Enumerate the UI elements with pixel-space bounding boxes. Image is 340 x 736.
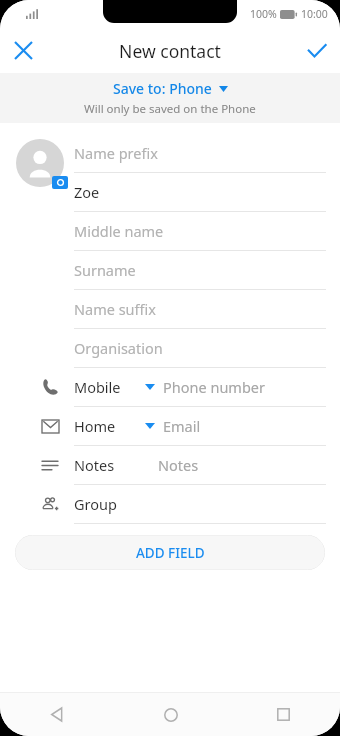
staticText: Mobile [74,377,121,397]
button[interactable]: Name prefix [0,134,340,173]
staticText: 10:00 [301,7,328,21]
button[interactable]: Close [0,28,46,73]
staticText: Middle name [74,221,164,241]
button[interactable]: Group [0,485,340,524]
button[interactable]: Save to: Phone [0,73,340,123]
staticText: Will only be saved on the Phone [84,101,256,117]
button[interactable]: Surname [0,251,340,290]
button[interactable]: Middle name [0,212,340,251]
button[interactable]: Recents [227,693,340,736]
button[interactable]: Home [114,693,227,736]
staticText: ADD FIELD [136,544,205,562]
staticText: Save to: Phone [113,79,212,98]
staticText: New contact [119,39,221,63]
staticText: Name prefix [74,143,158,163]
staticText: Home [74,416,116,436]
button[interactable]: Save [294,28,340,73]
button[interactable]: Notes [0,446,340,485]
button[interactable]: Home [0,407,340,446]
staticText: Notes [158,455,199,475]
button[interactable]: Organisation [0,329,340,368]
button[interactable]: Name suffix [0,290,340,329]
button[interactable]: Mobile [0,368,340,407]
staticText: Group [74,494,117,514]
staticText: 100% [250,7,277,21]
staticText: Phone number [163,377,265,397]
staticText: Organisation [74,338,163,358]
staticText: Name suffix [74,299,156,319]
button[interactable]: Back [0,693,114,736]
staticText: Surname [74,260,136,280]
button[interactable]: Zoe [0,173,340,212]
button[interactable]: Add photo [16,139,64,187]
staticText: Zoe [74,182,100,202]
staticText: Notes [74,455,115,475]
staticText: Email [163,416,201,436]
button[interactable]: ADD FIELD [15,535,325,570]
